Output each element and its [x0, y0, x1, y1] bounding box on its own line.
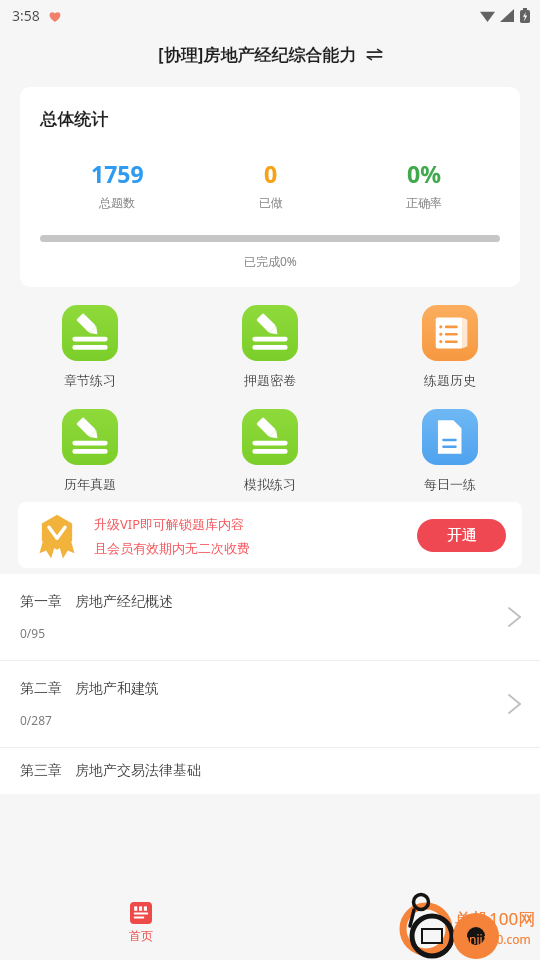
staticText: 章节练习 — [64, 372, 116, 388]
button[interactable]: 第一章 — [0, 574, 540, 661]
button[interactable]: [协理]房地产经纪综合能力 — [158, 43, 383, 66]
staticText: 开通 — [447, 526, 477, 545]
button[interactable]: 押题密卷 — [180, 305, 360, 388]
button[interactable]: 章节练习 — [0, 305, 180, 388]
staticText: 总体统计 — [40, 109, 108, 130]
button[interactable]: 开通 — [417, 519, 506, 552]
staticText: [协理]房地产经纪综合能力 — [158, 43, 357, 66]
staticText: 单机100网 — [455, 907, 536, 930]
button[interactable]: 升级VIP即可解锁题库内容 — [18, 502, 522, 568]
staticText: 已做 — [259, 195, 283, 210]
staticText: 房地产经纪概述 — [75, 593, 173, 611]
staticText: 总题数 — [99, 195, 135, 210]
staticText: 0 — [264, 158, 278, 189]
button[interactable]: 每日一练 — [360, 409, 540, 492]
staticText: 历年真题 — [64, 476, 116, 492]
button[interactable]: 模拟练习 — [180, 409, 360, 492]
button[interactable]: 第三章 — [0, 748, 540, 794]
staticText: 第一章 — [20, 593, 62, 611]
staticText: 0/95 — [20, 625, 46, 641]
staticText: 房地产交易法律基础 — [75, 762, 201, 780]
staticText: 首页 — [129, 928, 153, 943]
button[interactable]: 第二章 — [0, 661, 540, 748]
staticText: 0/287 — [20, 712, 52, 728]
staticText: 第三章 — [20, 762, 62, 780]
staticText: 正确率 — [406, 195, 442, 210]
staticText: 3:58 — [12, 6, 40, 25]
staticText: 每日一练 — [424, 476, 476, 492]
staticText: 已完成0% — [244, 253, 297, 269]
staticText: danji100.com — [455, 931, 531, 947]
button[interactable]: 历年真题 — [0, 409, 180, 492]
staticText: 且会员有效期内无二次收费 — [94, 540, 250, 556]
staticText: 模拟练习 — [244, 476, 296, 492]
staticText: 押题密卷 — [244, 372, 296, 388]
staticText: 0% — [407, 158, 441, 189]
other: Switch subject — [366, 46, 383, 63]
staticText: 第二章 — [20, 680, 62, 698]
staticText: 房地产和建筑 — [75, 680, 159, 698]
button[interactable]: 首页 — [110, 902, 172, 943]
button[interactable]: 练题历史 — [360, 305, 540, 388]
staticText: 练题历史 — [424, 372, 476, 388]
staticText: 1759 — [91, 158, 144, 189]
staticText: 升级VIP即可解锁题库内容 — [94, 515, 245, 533]
